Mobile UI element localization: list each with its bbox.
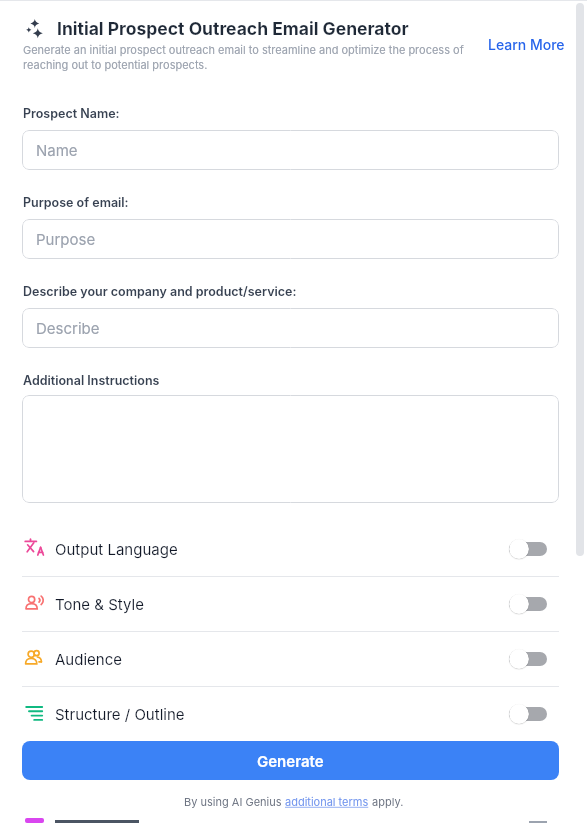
button[interactable]: Name	[22, 130, 559, 170]
staticText: By using AI Genius	[184, 795, 285, 808]
staticText: Prospect Name:	[23, 106, 120, 121]
staticText: Purpose of email:	[23, 195, 129, 210]
button[interactable]: additional terms	[285, 795, 369, 808]
staticText: Describe	[36, 319, 100, 337]
staticText: Additional Instructions	[23, 373, 160, 388]
button[interactable]: Describe	[22, 308, 559, 348]
button[interactable]: Structure / Outline	[0, 687, 587, 741]
staticText: Describe your company and product/servic…	[23, 284, 297, 299]
button[interactable]	[509, 539, 547, 559]
staticText: apply.	[369, 795, 404, 808]
button[interactable]: Output Language	[0, 522, 587, 576]
button[interactable]: Tone & Style	[0, 577, 587, 631]
button[interactable]: Audience	[0, 632, 587, 686]
staticText: Audience	[55, 650, 122, 668]
button[interactable]: Generate	[22, 741, 559, 780]
button[interactable]	[509, 649, 547, 669]
staticText: Purpose	[36, 230, 96, 248]
staticText: Name	[36, 141, 78, 159]
button[interactable]	[509, 594, 547, 614]
staticText: additional terms	[285, 795, 369, 808]
staticText: Generate	[257, 752, 324, 770]
staticText: Learn More	[488, 36, 565, 53]
staticText: Initial Prospect Outreach Email Generato…	[57, 18, 409, 39]
staticText: Generate an initial prospect outreach em…	[23, 43, 499, 72]
staticText: Tone & Style	[55, 595, 144, 613]
button[interactable]	[509, 704, 547, 724]
button[interactable]: Learn More	[486, 34, 567, 55]
button[interactable]: Purpose	[22, 219, 559, 259]
staticText: Structure / Outline	[55, 705, 185, 723]
staticText: Output Language	[55, 540, 178, 558]
button[interactable]	[22, 395, 559, 503]
